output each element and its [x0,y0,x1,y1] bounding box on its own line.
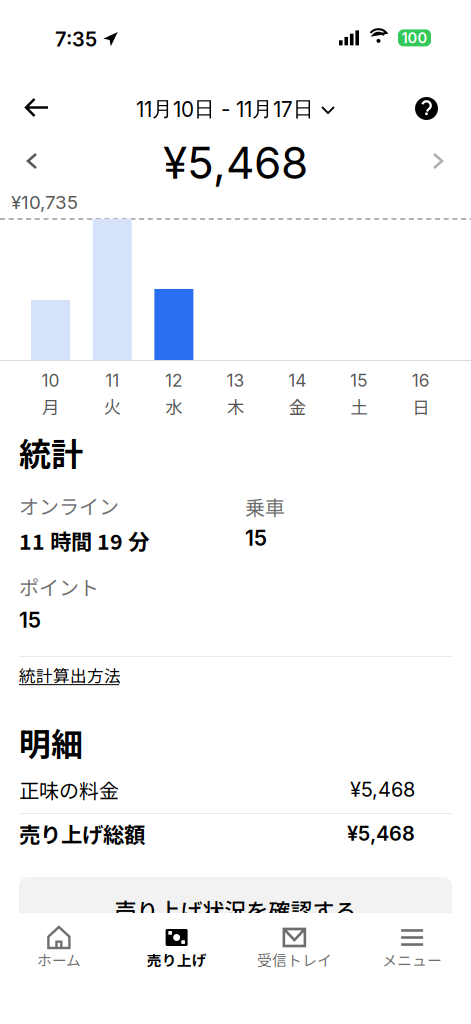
button[interactable]: 売り上げ状況を確認する [19,877,452,927]
staticText: 13 [227,370,245,391]
button[interactable]: メニュー [353,913,471,975]
staticText: 7:35 [55,27,97,51]
staticText: オンライン [19,491,119,520]
staticText: 15 [19,607,41,633]
button[interactable]: Next week [422,142,454,180]
button[interactable]: ホーム [0,913,118,975]
staticText: ¥5,468 [347,821,415,845]
staticText: 16 [412,370,430,391]
staticText: ¥5,468 [350,777,415,802]
staticText: 売り上げ総額 [19,818,145,849]
staticText: 統計 [19,429,83,475]
staticText: 11月10日 - 11月17日 [136,96,314,122]
staticText: 12 [165,370,183,391]
staticText: 正味の料金 [19,775,119,804]
staticText: 金 [289,394,306,419]
staticText: 14 [288,370,306,391]
button[interactable]: 受信トレイ [235,913,353,975]
staticText: 火 [104,394,121,419]
button[interactable]: 売り上げ [118,913,236,975]
staticText: ¥5,468 [163,136,308,189]
button[interactable]: 11月10日 - 11月17日 [131,89,339,129]
staticText: 100 [401,29,427,47]
staticText: 統計算出方法 [19,663,121,687]
staticText: 15 [245,525,267,551]
button[interactable]: Previous week [16,142,48,180]
staticText: 土 [350,394,367,419]
staticText: 受信トレイ [257,949,332,970]
staticText: ¥10,735 [11,191,78,214]
staticText: 明細 [19,719,83,765]
button[interactable]: Back [16,88,58,127]
staticText: 乗車 [245,492,285,521]
staticText: ポイント [19,572,99,601]
staticText: ホーム [37,949,81,970]
button[interactable]: Help [405,87,448,130]
staticText: 木 [227,394,244,419]
staticText: 10 [41,370,59,391]
staticText: 11 時間 19 分 [19,525,149,556]
staticText: 日 [412,394,429,419]
staticText: 売り上げ状況を確認する [114,894,356,926]
staticText: 売り上げ [147,949,207,970]
staticText: 15 [350,370,368,391]
staticText: 11 [105,370,119,391]
staticText: 月 [42,394,59,419]
staticText: 水 [165,394,182,419]
staticText: メニュー [382,949,442,970]
button[interactable]: 統計算出方法 [19,658,121,693]
